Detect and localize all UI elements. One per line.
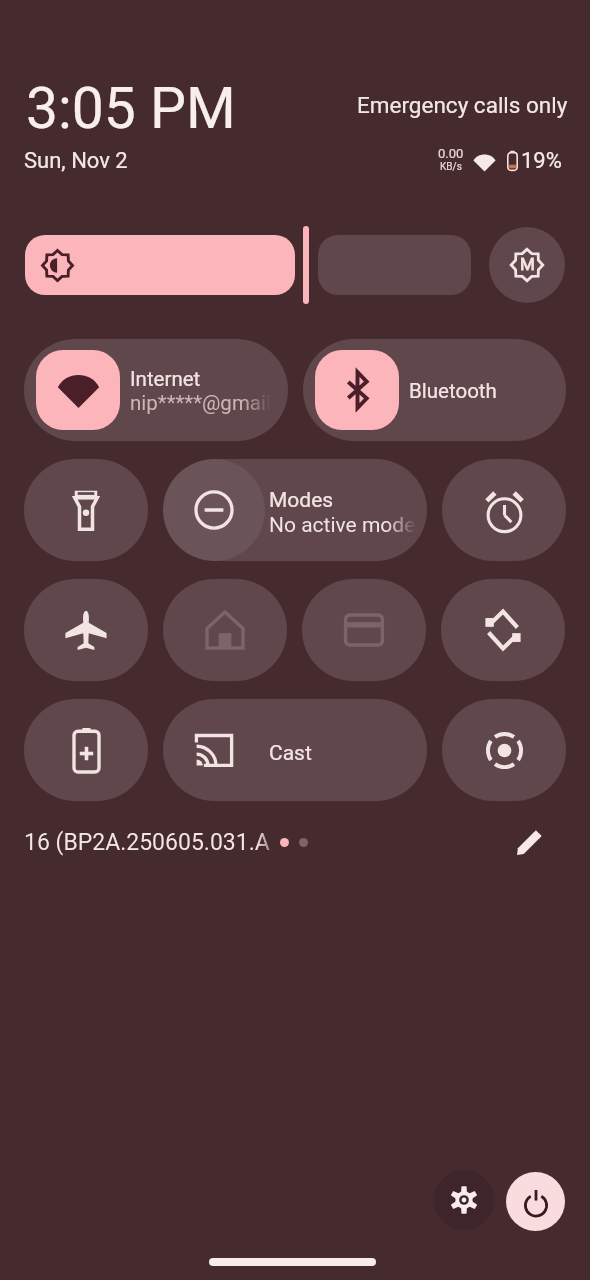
staticText: Bluetooth <box>409 379 497 403</box>
button[interactable]: Device controls <box>163 579 287 681</box>
staticText: Cast <box>269 741 312 766</box>
button[interactable]: Battery saver <box>24 699 148 801</box>
button[interactable]: Modes <box>489 227 565 303</box>
button[interactable]: Screen record <box>442 699 566 801</box>
button[interactable]: Settings <box>434 1170 494 1230</box>
staticText: 3:05 PM <box>26 75 236 142</box>
staticText: KB/s <box>440 161 462 173</box>
button[interactable]: Power <box>506 1172 565 1231</box>
button[interactable]: Flashlight <box>24 459 148 561</box>
button[interactable]: Modes <box>163 459 427 561</box>
staticText: 19% <box>521 148 562 174</box>
staticText: nip*****@gmail <box>130 391 271 415</box>
staticText: Emergency calls only <box>357 92 568 118</box>
button[interactable]: Cast <box>163 699 427 801</box>
button[interactable]: Alarm <box>442 459 566 561</box>
button[interactable]: Auto brightness <box>318 235 471 295</box>
staticText: No active mode <box>269 513 416 538</box>
button[interactable]: Brightness <box>25 235 295 295</box>
button[interactable]: Internet <box>24 339 288 441</box>
button[interactable]: Wallet <box>302 579 426 681</box>
staticText: M <box>520 254 535 274</box>
button[interactable]: Bluetooth <box>303 339 566 441</box>
staticText: Sun, Nov 2 <box>24 148 128 174</box>
button[interactable]: Airplane mode <box>24 579 148 681</box>
button[interactable]: Auto rotate <box>441 579 565 681</box>
staticText: Modes <box>269 488 334 513</box>
button[interactable]: Edit <box>505 818 553 866</box>
staticText: 0.00 <box>438 146 464 161</box>
staticText: 16 (BP2A.250605.031.A3 <box>24 829 270 856</box>
staticText: Internet <box>130 367 201 391</box>
